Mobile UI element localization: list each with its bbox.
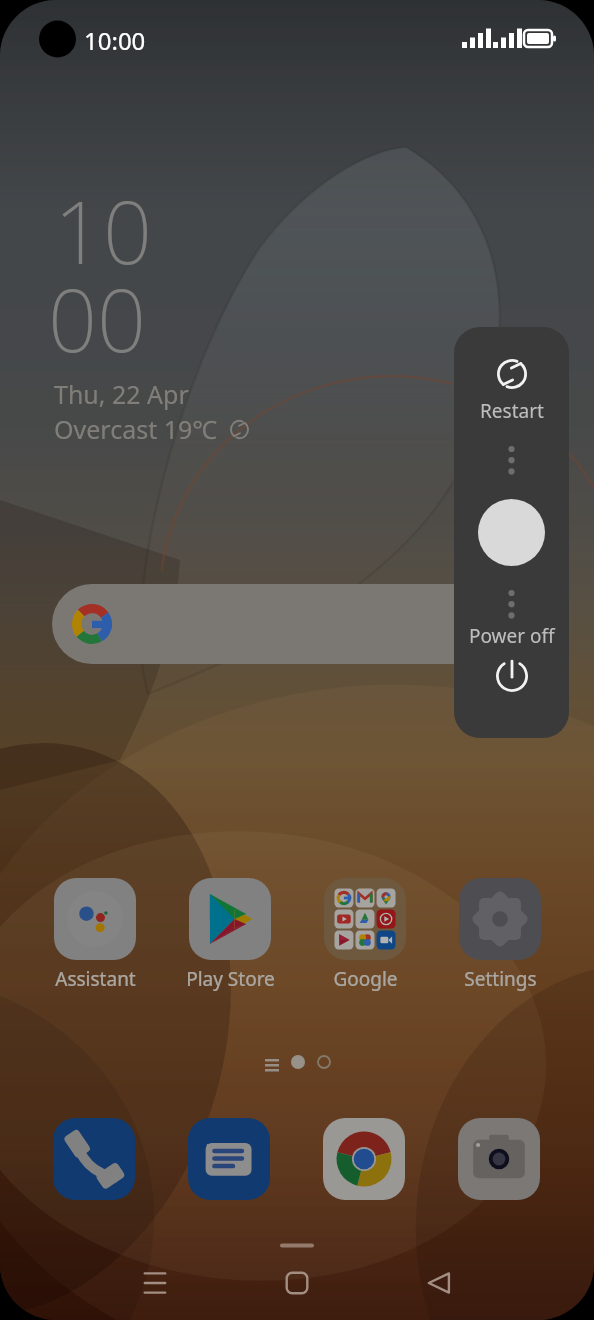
staticText: 10: [54, 172, 153, 289]
button[interactable]: Chrome: [323, 1118, 405, 1200]
button[interactable]: Assistant: [28, 878, 162, 992]
button[interactable]: Camera: [458, 1118, 540, 1200]
staticText: Assistant: [55, 966, 136, 992]
staticText: Thu, 22 Apr: [54, 377, 189, 411]
staticText: 10:00: [84, 24, 146, 57]
button[interactable]: Back: [414, 1258, 464, 1308]
staticText: Overcast 19℃: [54, 412, 218, 446]
button[interactable]: Phone: [53, 1118, 135, 1200]
staticText: Google: [333, 966, 398, 992]
button[interactable]: Restart: [454, 359, 569, 441]
button[interactable]: Recent apps: [130, 1258, 180, 1308]
button[interactable]: Home: [272, 1258, 322, 1308]
staticText: Play Store: [186, 966, 275, 992]
button[interactable]: Settings: [433, 878, 567, 992]
staticText: 00: [48, 260, 147, 377]
button[interactable]: Power off: [454, 623, 569, 703]
staticText: Settings: [464, 966, 537, 992]
button[interactable]: Play Store: [163, 878, 297, 992]
button[interactable]: Slide to power off: [478, 499, 545, 566]
button[interactable]: Google: [298, 878, 432, 992]
staticText: Power off: [469, 623, 555, 649]
staticText: Restart: [480, 398, 544, 424]
button[interactable]: Messages: [188, 1118, 270, 1200]
button[interactable]: [52, 584, 542, 664]
